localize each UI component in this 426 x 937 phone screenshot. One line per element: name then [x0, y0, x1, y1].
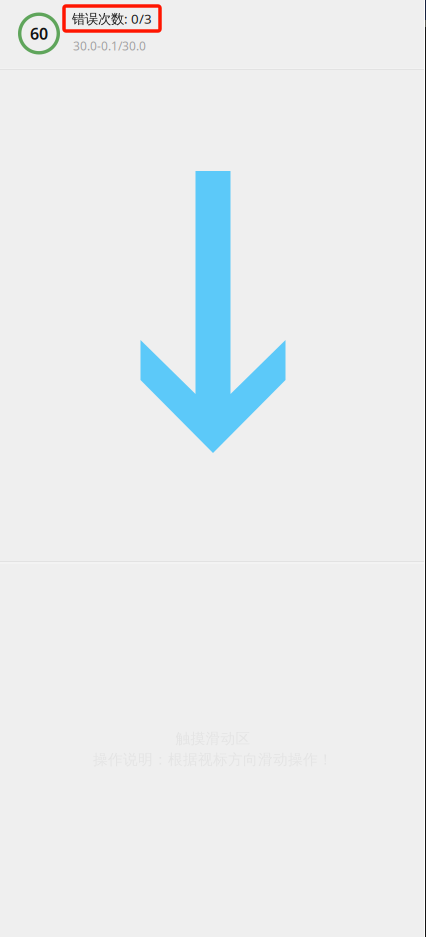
staticText: 错误次数: 0/3 — [72, 10, 152, 27]
button[interactable]: 错误次数: 0/3 — [64, 6, 160, 31]
staticText: 60 — [30, 23, 48, 44]
button[interactable]: 触摸滑动区 — [0, 564, 426, 937]
staticText: 操作说明：根据视标方向滑动操作！ — [93, 750, 333, 768]
button[interactable]: 当前等级 60 — [19, 13, 59, 53]
staticText: 触摸滑动区 — [175, 729, 250, 747]
staticText: 30.0-0.1/30.0 — [73, 38, 146, 54]
